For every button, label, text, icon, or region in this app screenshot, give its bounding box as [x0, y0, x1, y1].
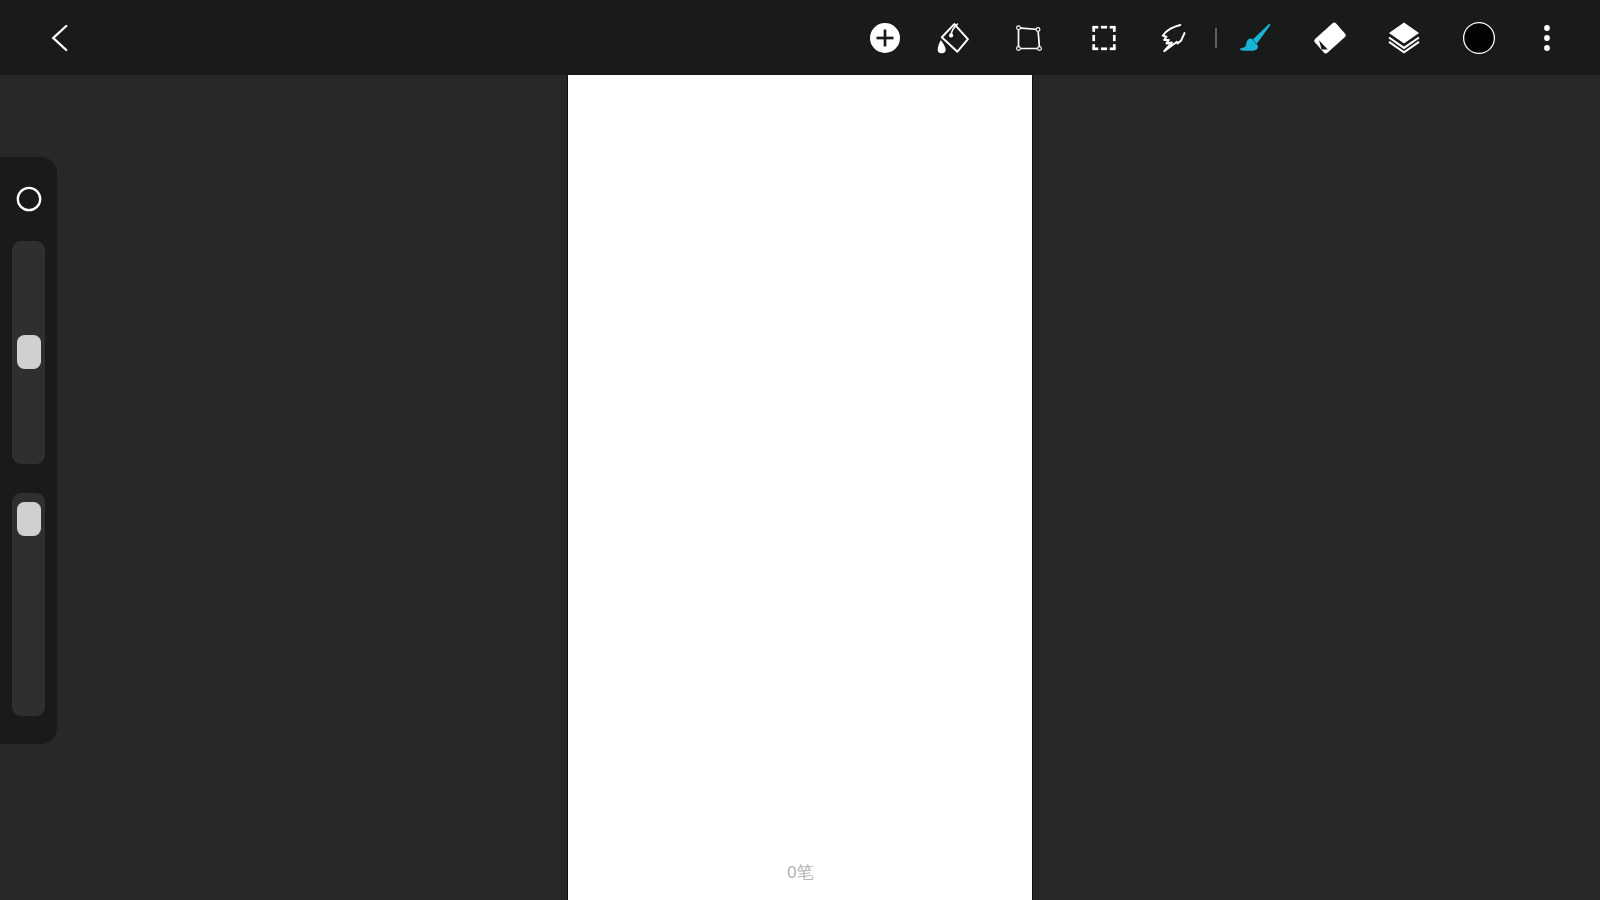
button[interactable]: Eraser — [1302, 10, 1358, 66]
button[interactable]: Lasso select — [1146, 10, 1202, 66]
button[interactable]: Layers — [1376, 10, 1432, 66]
button[interactable]: Transform — [1001, 10, 1057, 66]
button[interactable]: Opacity — [12, 493, 45, 716]
button[interactable]: More options — [1519, 10, 1575, 66]
button[interactable]: Add — [857, 10, 913, 66]
button[interactable]: Fill bucket — [925, 10, 981, 66]
button[interactable]: Rectangle select — [1076, 10, 1132, 66]
button[interactable]: Color — [1451, 10, 1507, 66]
button[interactable]: Brush — [1227, 10, 1283, 66]
button[interactable]: Brush size preview — [7, 177, 51, 221]
button[interactable]: Brush size — [12, 241, 45, 464]
staticText: 0笔 — [787, 860, 814, 883]
button[interactable]: Back — [35, 13, 85, 63]
